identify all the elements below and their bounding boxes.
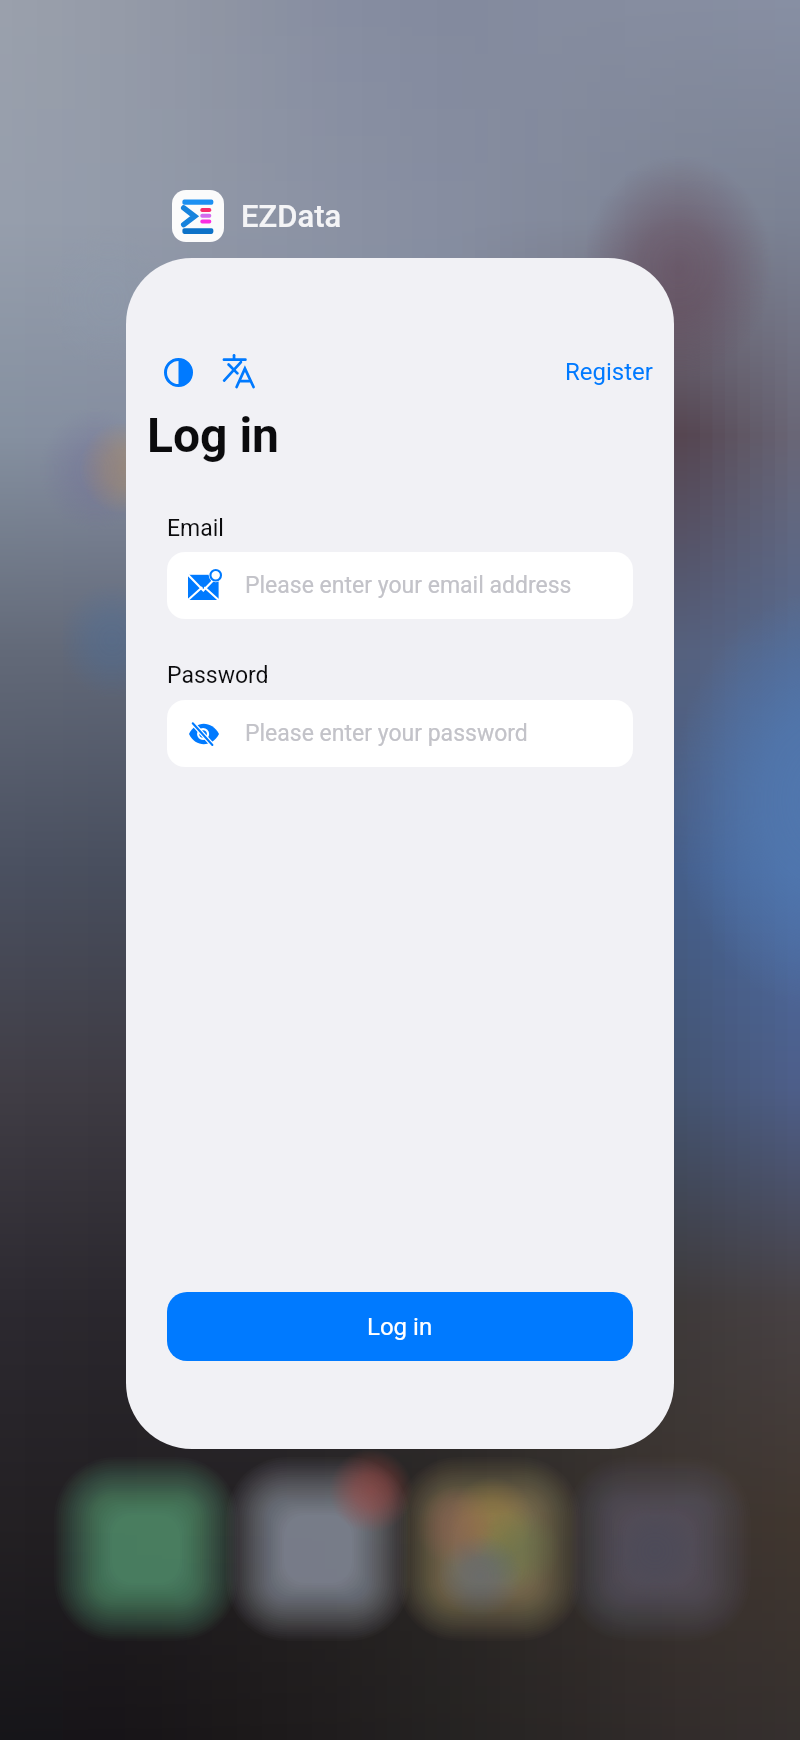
staticText: Please enter your password	[245, 720, 528, 747]
staticText: Register	[565, 358, 653, 386]
staticText: Please enter your email address	[245, 572, 572, 599]
button[interactable]: Please enter your email address	[167, 552, 633, 619]
staticText: Log in	[147, 407, 280, 463]
staticText: Password	[167, 662, 269, 689]
button[interactable]: Log in	[167, 1292, 633, 1361]
staticText: Log in	[367, 1313, 433, 1341]
button[interactable]: Register	[549, 346, 669, 398]
button[interactable]: Please enter your password	[167, 700, 633, 767]
staticText: EZData	[241, 198, 342, 234]
button[interactable]: Toggle dark mode	[149, 343, 207, 401]
button[interactable]: Change language	[210, 342, 268, 400]
staticText: Email	[167, 515, 224, 542]
